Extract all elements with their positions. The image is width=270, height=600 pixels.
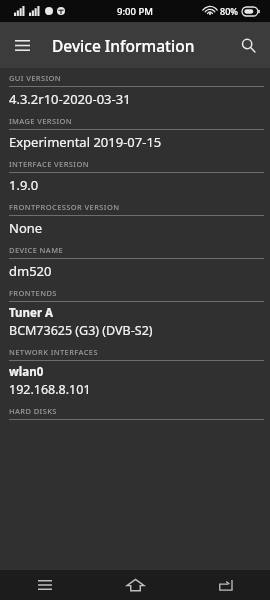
- staticText: 192.168.8.101: [9, 381, 91, 398]
- button[interactable]: NETWORK INTERFACES: [0, 342, 270, 401]
- button[interactable]: FRONTENDS: [0, 283, 270, 342]
- staticText: 80%: [220, 5, 238, 17]
- staticText: GUI VERSION: [9, 73, 62, 83]
- button[interactable]: Open navigation menu: [0, 23, 44, 67]
- staticText: None: [9, 219, 43, 237]
- button[interactable]: Back: [180, 570, 270, 600]
- staticText: 4.3.2r10-2020-03-31: [9, 90, 131, 108]
- staticText: 9:00 PM: [117, 5, 153, 18]
- staticText: Experimental 2019-07-15: [9, 133, 162, 151]
- button[interactable]: Search: [226, 23, 270, 67]
- staticText: INTERFACE VERSION: [9, 159, 89, 169]
- staticText: HARD DISKS: [9, 406, 57, 416]
- button[interactable]: INTERFACE VERSION: [0, 154, 270, 197]
- button[interactable]: HARD DISKS: [0, 401, 270, 425]
- button[interactable]: FRONTPROCESSOR VERSION: [0, 197, 270, 240]
- button[interactable]: Home: [90, 570, 180, 600]
- staticText: wlan0: [9, 364, 44, 380]
- staticText: dm520: [9, 262, 52, 280]
- staticText: DEVICE NAME: [9, 245, 64, 255]
- button[interactable]: GUI VERSION: [0, 68, 270, 111]
- button[interactable]: DEVICE NAME: [0, 240, 270, 283]
- staticText: FRONTENDS: [9, 288, 57, 298]
- button[interactable]: Recent apps: [0, 570, 90, 600]
- staticText: BCM73625 (G3) (DVB-S2): [9, 322, 153, 339]
- button[interactable]: IMAGE VERSION: [0, 111, 270, 154]
- staticText: IMAGE VERSION: [9, 116, 73, 126]
- staticText: Device Information: [52, 35, 195, 56]
- staticText: NETWORK INTERFACES: [9, 347, 98, 357]
- staticText: 1.9.0: [9, 176, 39, 194]
- staticText: Tuner A: [9, 305, 53, 321]
- staticText: FRONTPROCESSOR VERSION: [9, 202, 120, 212]
